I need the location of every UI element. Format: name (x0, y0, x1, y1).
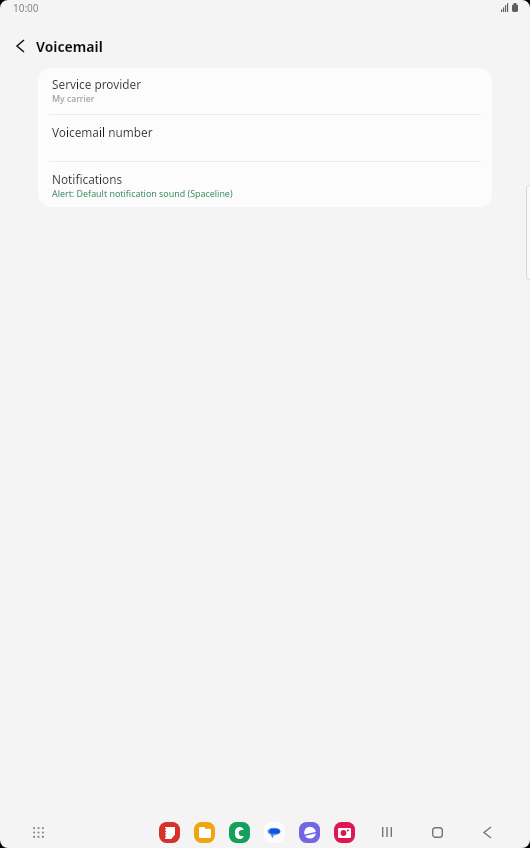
button[interactable]: My Files (194, 822, 215, 843)
button[interactable]: Service provider (38, 68, 492, 114)
button[interactable]: Internet (299, 822, 320, 843)
button[interactable]: Samsung Notes (159, 822, 180, 843)
button[interactable]: Camera (334, 822, 355, 843)
button[interactable]: Notifications (38, 162, 492, 207)
button[interactable]: Phone (229, 822, 250, 843)
staticText: Alert: Default notification sound (Space… (52, 187, 233, 199)
button[interactable]: Recent apps (373, 818, 401, 846)
staticText: Service provider (52, 76, 142, 92)
button[interactable]: Navigate up (6, 31, 34, 59)
button[interactable]: Voicemail number (38, 115, 492, 161)
staticText: 10:00 (13, 1, 39, 15)
staticText: Voicemail (36, 37, 103, 56)
staticText: My carrier (52, 92, 95, 104)
button[interactable]: Messages (264, 822, 285, 843)
button[interactable]: Apps (24, 818, 52, 846)
staticText: Notifications (52, 171, 123, 187)
button[interactable]: Home (423, 818, 451, 846)
button[interactable]: Back (473, 818, 501, 846)
staticText: Voicemail number (52, 124, 153, 140)
